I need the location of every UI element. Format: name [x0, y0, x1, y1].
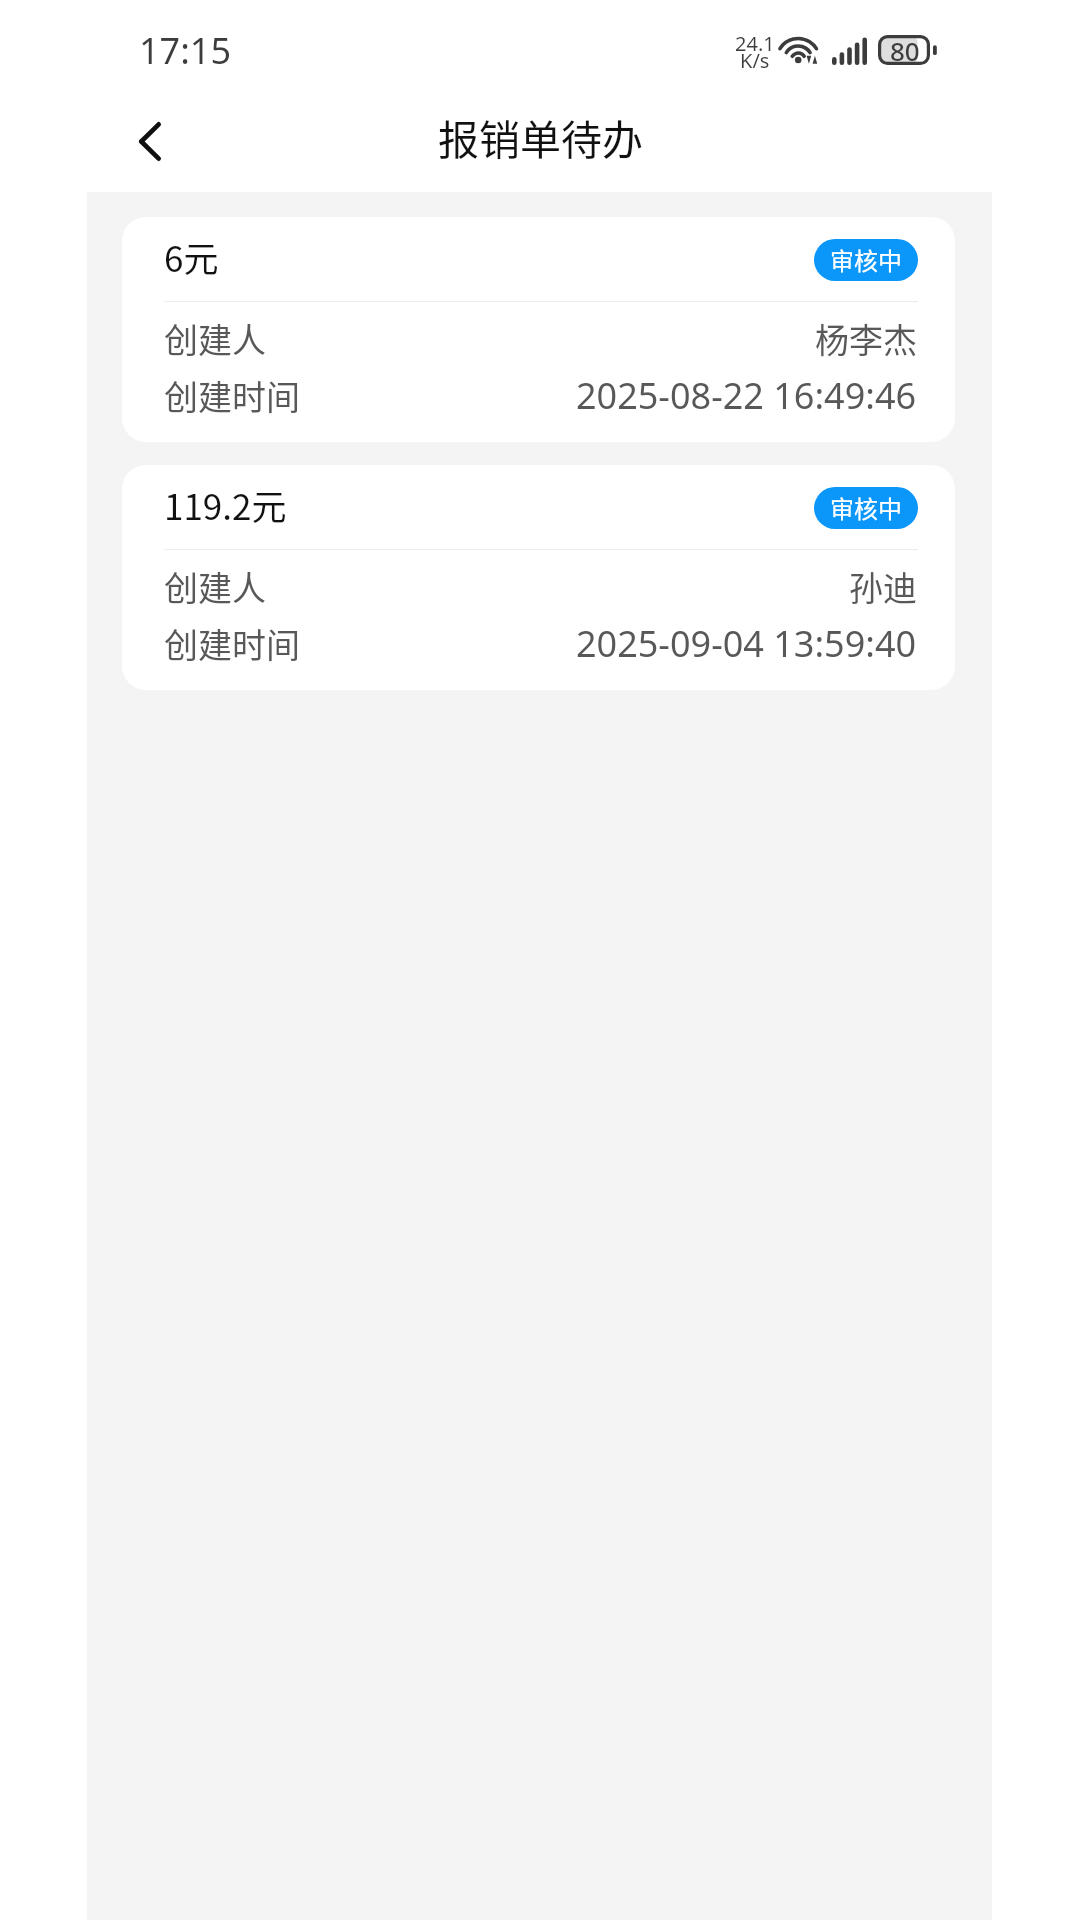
button[interactable]: 6元	[122, 217, 955, 442]
button[interactable]: 119.2元	[122, 465, 955, 690]
button[interactable]: 审核中	[814, 239, 918, 281]
button[interactable]: Back	[116, 107, 184, 175]
other: Battery 80 percent	[878, 35, 937, 66]
staticText: 杨李杰	[815, 314, 917, 363]
staticText: 创建时间	[164, 371, 300, 420]
staticText: 24.1	[735, 30, 775, 57]
button[interactable]: 审核中	[814, 487, 918, 529]
staticText: 创建时间	[164, 619, 300, 668]
staticText: 119.2元	[164, 479, 287, 530]
staticText: K/s	[740, 47, 770, 74]
other: Cellular signal	[832, 36, 868, 65]
staticText: 报销单待办	[438, 107, 643, 166]
staticText: 审核中	[830, 242, 902, 277]
staticText: 80	[890, 33, 920, 64]
staticText: 创建人	[164, 562, 266, 611]
staticText: 审核中	[830, 490, 902, 525]
staticText: 创建人	[164, 314, 266, 363]
staticText: 孙迪	[849, 562, 917, 611]
staticText: 6元	[164, 231, 219, 282]
staticText: 2025-08-22 16:49:46	[576, 371, 917, 420]
staticText: 17:15	[139, 26, 232, 75]
staticText: 2025-09-04 13:59:40	[576, 619, 917, 668]
other: Wi-Fi	[776, 34, 820, 66]
